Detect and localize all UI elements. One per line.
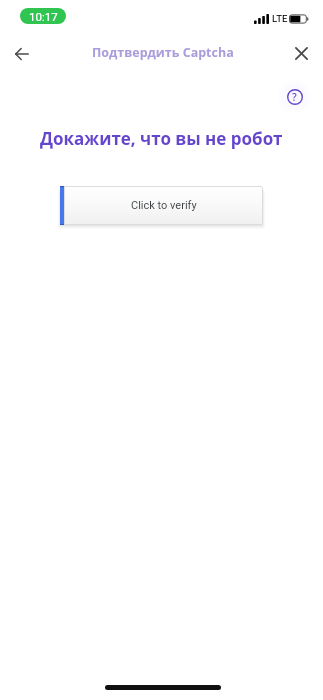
staticText: Подтвердить Captcha <box>92 44 234 61</box>
staticText: LTE <box>272 13 288 24</box>
staticText: Click to verify <box>131 199 197 212</box>
staticText: ? <box>292 90 297 104</box>
button[interactable]: Click to verify <box>60 186 263 231</box>
button[interactable]: Close <box>285 37 318 70</box>
button[interactable]: Help <box>278 80 311 113</box>
button[interactable]: Back <box>5 37 38 70</box>
staticText: Докажите, что вы не робот <box>40 127 283 150</box>
staticText: 10:17 <box>29 10 58 23</box>
